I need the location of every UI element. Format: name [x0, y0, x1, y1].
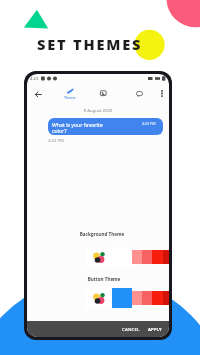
staticText: APPLY — [148, 327, 162, 333]
button[interactable]: Theme — [58, 88, 82, 101]
button[interactable]: APPLY — [146, 321, 164, 337]
button[interactable]: Pick custom colour — [85, 248, 112, 267]
button[interactable]: CANCEL — [120, 321, 142, 337]
button[interactable]: Colour swatch — [132, 250, 143, 264]
button[interactable]: Colour swatch — [142, 291, 153, 305]
button[interactable]: Colour swatch — [132, 291, 143, 305]
staticText: What is your favorite color? — [52, 121, 103, 135]
staticText: Button Theme — [33, 276, 169, 282]
button[interactable]: Wallpaper — [97, 87, 110, 100]
button[interactable]: Chat — [133, 87, 146, 100]
button[interactable]: Pick custom colour — [85, 289, 112, 308]
staticText: Theme — [64, 95, 76, 100]
button[interactable]: More options — [155, 87, 168, 100]
staticText: 4:23 PM — [142, 121, 156, 126]
staticText: 8 August 2020 — [27, 108, 169, 114]
staticText: 4:22 PM — [48, 138, 64, 144]
staticText: 4:23 — [30, 76, 39, 82]
staticText: SET THEMES — [37, 34, 143, 54]
staticText: CANCEL — [122, 327, 140, 333]
button[interactable]: What is your favorite color? — [48, 118, 163, 135]
button[interactable]: Back — [31, 87, 45, 101]
staticText: Background Theme — [31, 231, 169, 237]
button[interactable]: Colour swatch — [142, 250, 153, 264]
